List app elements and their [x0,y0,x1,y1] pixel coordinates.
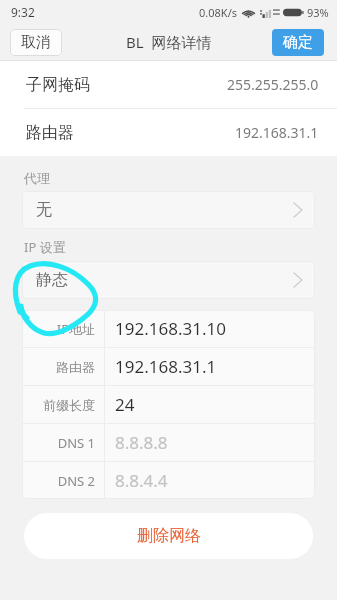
staticText: 路由器 [26,123,74,143]
staticText: 192.168.31.1 [235,123,319,142]
staticText: 192.168.31.1 [115,355,217,378]
button[interactable]: 取消 [10,29,62,56]
staticText: 93% [307,5,329,20]
staticText: 取消 [21,33,51,52]
staticText: IP地址 [56,320,95,338]
button[interactable]: 删除网络 [24,513,313,559]
staticText: 子网掩码 [26,75,90,95]
staticText: 192.168.31.10 [115,317,226,340]
staticText: 8.8.8.8 [115,431,168,454]
button[interactable]: 子网掩码 [0,61,337,108]
staticText: 静态 [36,270,68,290]
staticText: IP 设置 [24,238,66,256]
button[interactable]: DNS 2 [22,462,315,499]
button[interactable]: IP地址 [22,310,315,347]
button[interactable]: 静态 [22,261,315,299]
staticText: 9:32 [11,4,35,20]
button[interactable]: 路由器 [0,109,337,156]
staticText: DNS 1 [57,434,95,452]
button[interactable]: 路由器 [22,348,315,385]
staticText: 8.8.4.4 [115,469,168,492]
button[interactable]: DNS 1 [22,424,315,461]
staticText: 确定 [283,33,313,52]
staticText: 0.08K/s [199,5,237,20]
staticText: BL 网络详情 [126,32,212,52]
staticText: 255.255.255.0 [227,75,319,94]
staticText: 无 [36,200,52,220]
button[interactable]: 无 [22,191,315,229]
staticText: 路由器 [56,359,95,375]
staticText: 代理 [24,170,50,186]
staticText: 删除网络 [137,526,201,546]
button[interactable]: 确定 [272,29,324,56]
button[interactable]: 前缀长度 [22,386,315,423]
staticText: DNS 2 [57,472,95,490]
staticText: 24 [115,393,135,416]
staticText: 前缀长度 [43,397,95,413]
